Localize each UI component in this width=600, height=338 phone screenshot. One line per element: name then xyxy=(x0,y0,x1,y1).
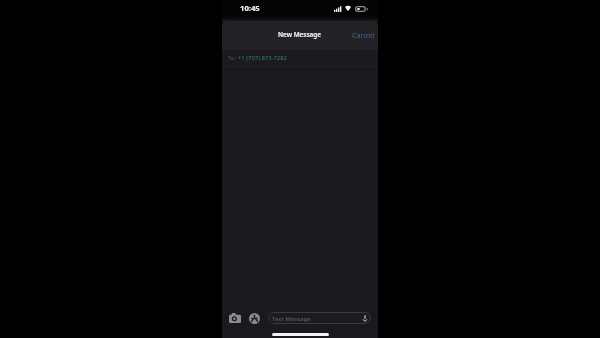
button[interactable]: Camera xyxy=(229,313,241,323)
staticText: 10:45 xyxy=(240,3,260,13)
button[interactable]: Dictate xyxy=(361,315,368,322)
staticText: New Message xyxy=(278,30,322,39)
staticText: Text Message xyxy=(272,314,311,322)
staticText: Cancel xyxy=(352,30,375,40)
button[interactable]: To: xyxy=(222,50,378,66)
button[interactable]: Apps xyxy=(249,313,260,324)
staticText: +1 (707) 873-7282 xyxy=(238,54,287,62)
button[interactable]: Text Message xyxy=(268,312,371,324)
button[interactable]: Cancel xyxy=(348,26,378,44)
staticText: To: xyxy=(228,54,237,62)
